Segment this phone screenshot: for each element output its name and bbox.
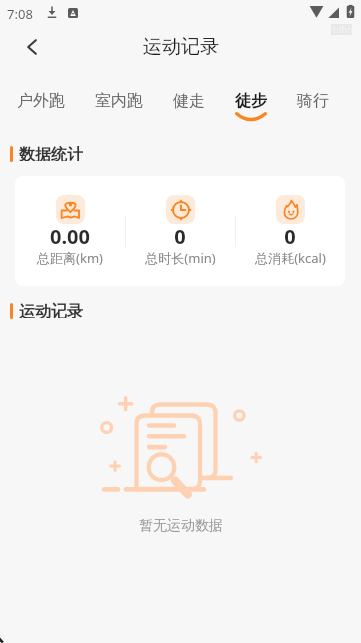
staticText: bfhh (333, 23, 353, 34)
staticText: 徒步 (235, 91, 267, 111)
staticText: 0.00 (50, 223, 90, 250)
button[interactable]: 骑行 (289, 91, 337, 111)
staticText: 户外跑 (17, 91, 65, 111)
button[interactable]: 0 (235, 176, 345, 286)
staticText: 7:08 (7, 5, 33, 23)
button[interactable]: 户外跑 (9, 91, 73, 111)
staticText: 0 (174, 223, 186, 250)
staticText: 暂无运动数据 (139, 517, 223, 535)
button[interactable]: 0 (125, 176, 235, 286)
staticText: 总时长(min) (145, 249, 216, 267)
staticText: 健走 (173, 91, 205, 111)
staticText: 运动记录 (19, 302, 83, 318)
button[interactable]: Back (11, 26, 53, 68)
staticText: 总距离(km) (37, 249, 103, 267)
staticText: 室内跑 (95, 91, 143, 111)
button[interactable]: 0.00 (15, 176, 125, 286)
button[interactable]: 室内跑 (87, 91, 151, 111)
staticText: 数据统计 (19, 145, 83, 161)
staticText: 运动记录 (143, 35, 219, 59)
staticText: 总消耗(kcal) (255, 249, 326, 267)
button[interactable]: 徒步 (227, 91, 275, 121)
staticText: 0 (284, 223, 296, 250)
staticText: 骑行 (297, 91, 329, 111)
button[interactable]: 健走 (165, 91, 213, 111)
